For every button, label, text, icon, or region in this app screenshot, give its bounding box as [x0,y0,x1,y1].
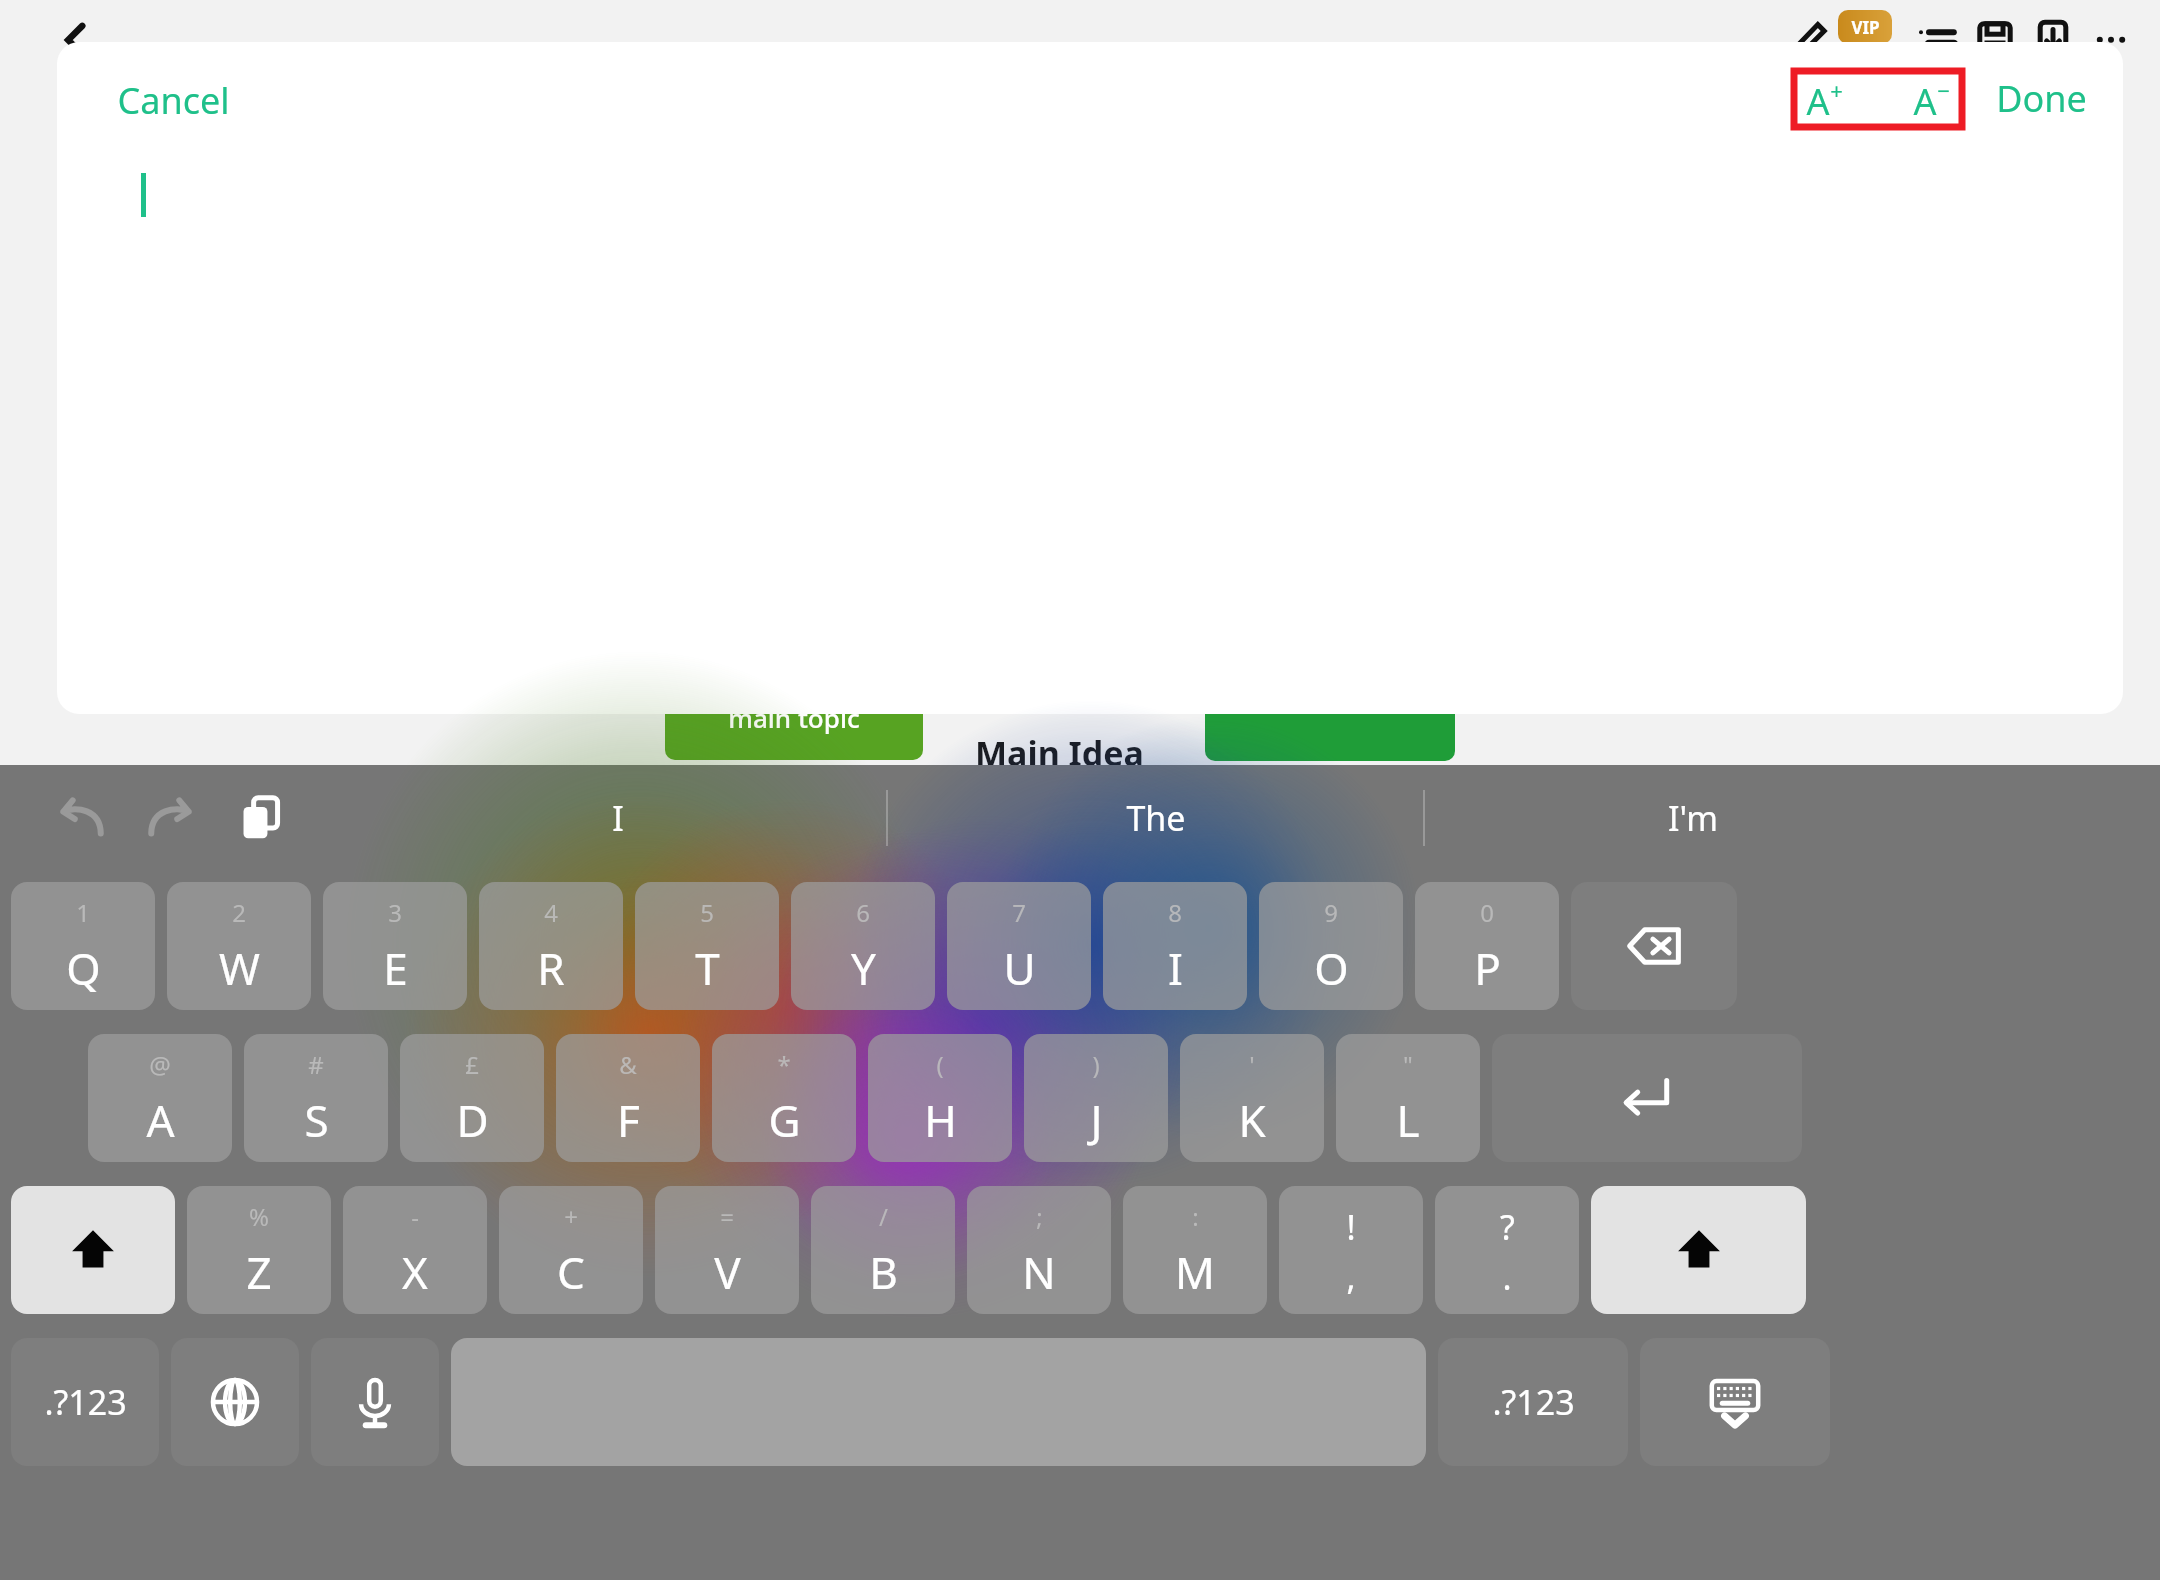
staticText: V [714,1242,741,1302]
staticText: 5 [700,896,714,929]
staticText: : [1192,1200,1199,1233]
staticText: ; [1036,1200,1043,1233]
staticText: B [869,1242,898,1302]
staticText: I [1168,938,1183,998]
button[interactable]: & [556,1034,700,1162]
button[interactable]: More options [2082,10,2140,68]
staticText: Done [1996,74,2087,123]
staticText: 6 [856,896,870,929]
button[interactable]: 7 [947,882,1091,1010]
staticText: E [383,938,408,998]
button[interactable]: " [1336,1034,1480,1162]
button[interactable]: The [888,765,1423,870]
staticText: W [219,938,260,998]
staticText: Cancel [117,76,230,125]
button[interactable]: VIP [1838,10,1892,44]
button[interactable]: / [811,1186,955,1314]
button[interactable]: Hide keyboard [1640,1338,1830,1466]
staticText: 8 [1168,896,1182,929]
button[interactable]: Back [55,18,99,62]
button[interactable]: ! [1279,1186,1423,1314]
button[interactable]: 2 [167,882,311,1010]
button[interactable]: Paste [220,777,302,859]
button[interactable]: : [1123,1186,1267,1314]
staticText: / [879,1200,888,1233]
button[interactable]: 5 [635,882,779,1010]
staticText: A [1913,77,1937,121]
button[interactable]: 1 [11,882,155,1010]
button[interactable]: * [712,1034,856,1162]
button[interactable]: ? [1435,1186,1579,1314]
staticText: = [720,1200,734,1233]
staticText: " [1403,1048,1413,1081]
staticText: - [411,1200,419,1233]
button[interactable]: ( [868,1034,1012,1162]
button[interactable]: + [499,1186,643,1314]
staticText: £ [465,1048,479,1081]
button[interactable]: Save [1966,10,2024,68]
button[interactable]: Backspace [1571,882,1737,1010]
staticText: .?123 [44,1379,127,1425]
button[interactable]: Change language [171,1338,299,1466]
button[interactable]: ' [1180,1034,1324,1162]
staticText: * [777,1048,791,1081]
button[interactable]: 3 [323,882,467,1010]
staticText: + [1830,75,1843,105]
staticText: R [537,938,565,998]
button[interactable]: I'm [1425,765,1960,870]
button[interactable]: 4 [479,882,623,1010]
button[interactable]: Done [1980,64,2103,133]
staticText: @ [149,1048,171,1081]
button[interactable]: 6 [791,882,935,1010]
staticText: J [1090,1090,1103,1150]
button[interactable]: ; [967,1186,1111,1314]
button[interactable]: - [343,1186,487,1314]
button[interactable]: @ [88,1034,232,1162]
staticText: S [304,1090,329,1150]
button[interactable]: # [244,1034,388,1162]
button[interactable]: Cancel [87,62,260,139]
button[interactable]: £ [400,1034,544,1162]
staticText: Main Idea [975,730,1144,776]
staticText: ! [1346,1204,1356,1250]
staticText: A [146,1090,175,1150]
staticText: − [1937,75,1950,105]
button[interactable]: Shift [1591,1186,1806,1314]
staticText: O [1314,938,1349,998]
button[interactable]: Outline [1908,10,1966,68]
staticText: D [456,1090,489,1150]
staticText: & [619,1048,637,1081]
staticText: K [1238,1090,1266,1150]
staticText: main topic [728,700,860,735]
button[interactable]: 9 [1259,882,1403,1010]
button[interactable]: Undo [40,777,122,859]
button[interactable]: .?123 [11,1338,159,1466]
button[interactable]: Return [1492,1034,1802,1162]
button[interactable]: Download [2024,10,2082,68]
button[interactable]: Redo [130,777,212,859]
button[interactable]: Increase font size [1794,71,1855,127]
button[interactable]: .?123 [1438,1338,1628,1466]
staticText: ' [1249,1048,1255,1081]
button[interactable]: Edit [1780,10,1838,68]
staticText: 4 [544,896,558,929]
staticText: Y [851,938,876,998]
button[interactable]: = [655,1186,799,1314]
staticText: ( [936,1048,944,1081]
button[interactable]: Shift [11,1186,175,1314]
button[interactable]: % [187,1186,331,1314]
staticText: T [695,938,720,998]
button[interactable]: Decrease font size [1901,71,1962,127]
staticText: I'm [1668,795,1718,841]
staticText: 2 [232,896,246,929]
button[interactable]: 8 [1103,882,1247,1010]
staticText: .?123 [1492,1379,1575,1425]
staticText: The [1126,795,1186,841]
button[interactable]: 0 [1415,882,1559,1010]
staticText: G [768,1090,801,1150]
staticText: Z [246,1242,272,1302]
button[interactable]: Voice input [311,1338,439,1466]
button[interactable]: ) [1024,1034,1168,1162]
button[interactable]: I [350,765,886,870]
